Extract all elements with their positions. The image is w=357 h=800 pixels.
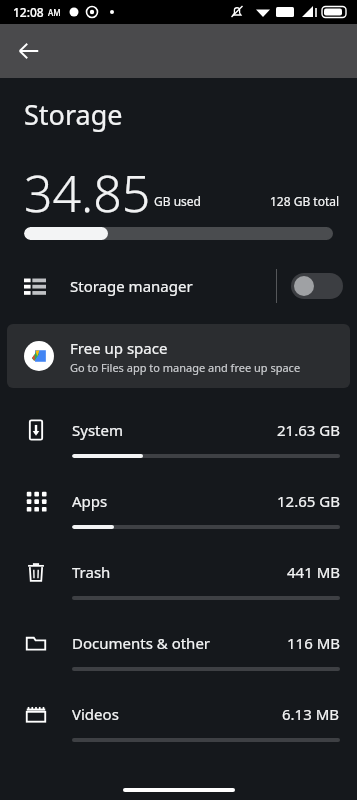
staticText: Trash [72,562,111,582]
staticText: System [72,420,123,440]
staticText: 128 GB total [270,193,340,209]
staticText: Storage [24,96,123,133]
button[interactable]: Documents & other [0,619,357,690]
button[interactable]: Back [6,28,52,74]
staticText: GB used [154,193,201,209]
staticText: 441 MB [287,562,340,582]
staticText: Documents & other [72,633,211,653]
button[interactable]: Trash [0,548,357,619]
staticText: Storage manager [70,276,193,296]
staticText: 34.85 [24,159,151,215]
staticText: AM [48,7,61,18]
staticText: 21.63 GB [277,420,340,440]
staticText: Apps [72,491,108,511]
button[interactable]: Storage manager toggle [291,271,343,301]
button[interactable]: Apps [0,477,357,548]
button[interactable]: Storage manager [0,262,357,310]
staticText: 12:08 [13,4,44,20]
button[interactable]: Free up space [7,324,350,388]
button[interactable]: System [0,406,357,477]
button[interactable]: Videos [0,690,357,761]
staticText: Go to Files app to manage and free up sp… [70,360,301,375]
staticText: 6.13 MB [282,704,340,724]
staticText: 116 MB [287,633,340,653]
staticText: Videos [72,704,119,724]
staticText: Free up space [70,338,168,358]
staticText: 12.65 GB [277,491,340,511]
